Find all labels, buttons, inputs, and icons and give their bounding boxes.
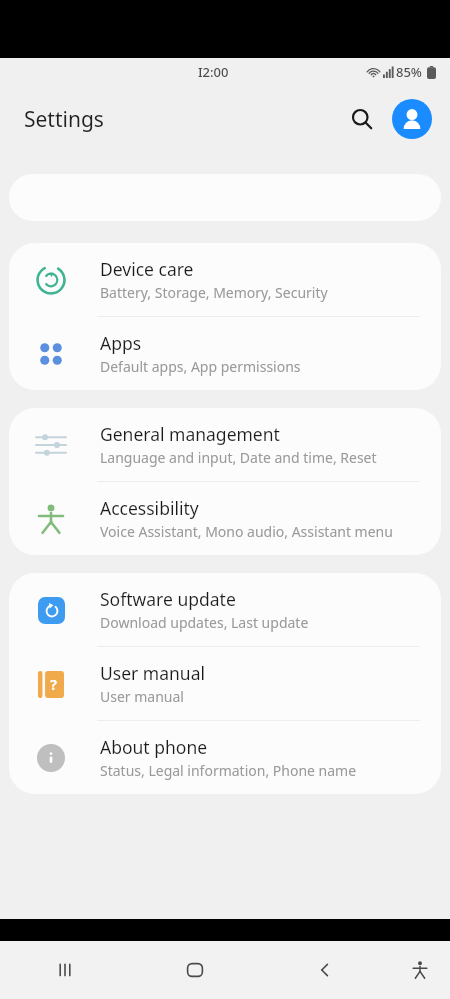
button[interactable]: ? <box>9 647 441 720</box>
staticText: Default apps, App permissions <box>100 357 301 376</box>
button[interactable]: Accessibility <box>390 941 450 999</box>
staticText: 85% <box>396 63 422 81</box>
staticText: ? <box>50 675 57 694</box>
staticText: General management <box>100 422 280 446</box>
staticText: Voice Assistant, Mono audio, Assistant m… <box>100 522 393 541</box>
staticText: Status, Legal information, Phone name <box>100 761 357 780</box>
staticText: Device care <box>100 257 194 281</box>
staticText: Apps <box>100 331 142 355</box>
button[interactable]: Home <box>130 941 260 999</box>
staticText: I2:00 <box>198 63 229 81</box>
button[interactable]: About phone <box>9 721 441 794</box>
staticText: Download updates, Last update <box>100 613 309 632</box>
button[interactable]: Account <box>392 99 432 139</box>
button[interactable]: Search <box>340 97 384 141</box>
staticText: Accessibility <box>100 496 199 520</box>
staticText: About phone <box>100 735 208 759</box>
button[interactable]: Software update <box>9 573 441 646</box>
staticText: Software update <box>100 587 236 611</box>
staticText: User manual <box>100 687 184 706</box>
staticText: Settings <box>24 105 104 134</box>
staticText: Language and input, Date and time, Reset <box>100 448 377 467</box>
button[interactable]: General management <box>9 408 441 481</box>
button[interactable]: Recents <box>0 941 130 999</box>
staticText: Battery, Storage, Memory, Security <box>100 283 328 302</box>
button[interactable]: Accessibility <box>9 482 441 555</box>
staticText: User manual <box>100 661 205 685</box>
button[interactable]: Apps <box>9 317 441 390</box>
button[interactable]: Device care <box>9 243 441 316</box>
button[interactable]: Back <box>260 941 390 999</box>
